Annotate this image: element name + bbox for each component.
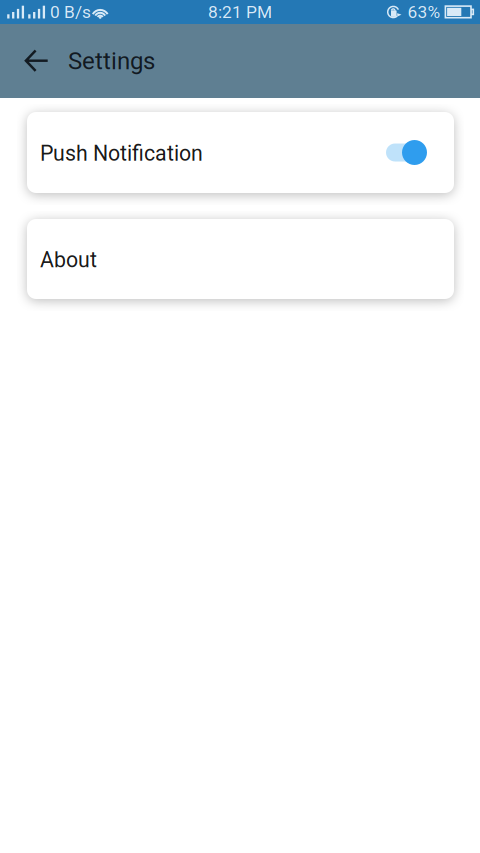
staticText: Settings (68, 47, 155, 75)
staticText: Push Notification (40, 141, 203, 166)
staticText: 63% (407, 2, 440, 22)
button[interactable]: About (27, 219, 454, 299)
button[interactable]: Back (25, 36, 68, 86)
staticText: 0 B/s (50, 2, 91, 22)
button[interactable]: Push Notification (27, 112, 454, 193)
staticText: About (40, 247, 97, 272)
staticText: 8:21 PM (208, 2, 272, 22)
